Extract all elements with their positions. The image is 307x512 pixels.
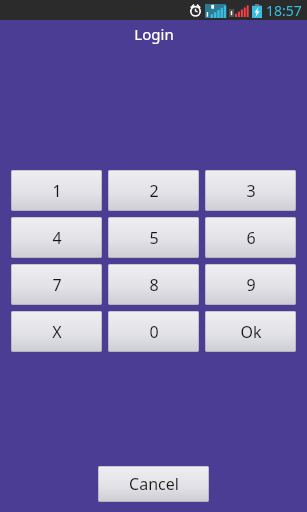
staticText: 2 <box>149 180 159 202</box>
staticText: 5 <box>149 227 159 249</box>
staticText: 9 <box>246 274 256 296</box>
staticText: 4 <box>52 227 62 249</box>
staticText: 3 <box>246 180 256 202</box>
other: Alarm set <box>189 4 202 17</box>
staticText: X <box>52 321 62 343</box>
button[interactable]: 8 <box>108 264 199 305</box>
button[interactable]: 5 <box>108 217 199 258</box>
staticText: Cancel <box>129 473 179 495</box>
button[interactable]: X <box>11 311 102 352</box>
button[interactable]: 3 <box>205 170 296 211</box>
button[interactable]: 1 <box>11 170 102 211</box>
staticText: Login <box>134 24 174 44</box>
other: Battery charging <box>252 4 262 18</box>
button[interactable]: 7 <box>11 264 102 305</box>
staticText: 7 <box>52 274 62 296</box>
button[interactable]: 9 <box>205 264 296 305</box>
button[interactable]: 2 <box>108 170 199 211</box>
staticText: Ok <box>240 321 262 343</box>
staticText: 0 <box>149 321 159 343</box>
button[interactable]: 0 <box>108 311 199 352</box>
staticText: 1 <box>52 180 62 202</box>
staticText: 8 <box>149 274 159 296</box>
button[interactable]: 6 <box>205 217 296 258</box>
staticText: 6 <box>246 227 256 249</box>
staticText: 18:57 <box>266 1 302 20</box>
button[interactable]: Cancel <box>98 466 209 502</box>
button[interactable]: Ok <box>205 311 296 352</box>
button[interactable]: 4 <box>11 217 102 258</box>
